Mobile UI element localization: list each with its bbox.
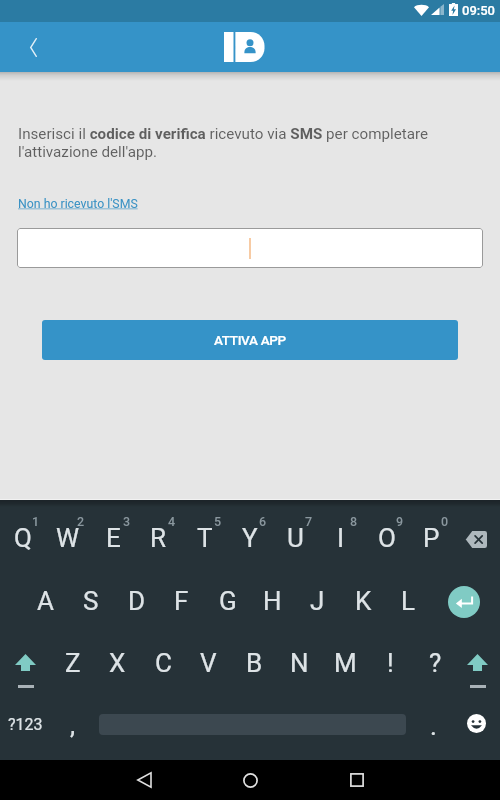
button[interactable]: M [323, 638, 368, 688]
button[interactable]: Y [227, 513, 272, 563]
button[interactable]: O [364, 513, 409, 563]
staticText: J [310, 586, 325, 616]
staticText: 8 [350, 514, 358, 529]
staticText: O [378, 523, 396, 553]
button[interactable]: , [55, 703, 91, 747]
button[interactable]: Indietro [120, 760, 168, 800]
staticText: F [174, 586, 189, 616]
staticText: ? [429, 648, 442, 678]
staticText: S [83, 586, 99, 616]
button[interactable]: Invio [441, 579, 486, 624]
button[interactable]: E [91, 513, 136, 563]
staticText: C [155, 648, 172, 678]
staticText: N [290, 648, 309, 678]
staticText: K [355, 586, 372, 616]
staticText: M [334, 648, 357, 678]
staticText: 9 [396, 514, 404, 529]
button[interactable]: Indietro [4, 22, 56, 72]
button[interactable] [17, 228, 483, 268]
button[interactable]: W [45, 513, 90, 563]
button[interactable]: P [409, 513, 454, 563]
button[interactable]: I [318, 513, 363, 563]
staticText: ! [387, 648, 394, 678]
button[interactable]: C [141, 638, 186, 688]
button[interactable]: B [232, 638, 277, 688]
staticText: 6 [259, 514, 267, 529]
staticText: A [37, 586, 54, 616]
staticText: H [263, 586, 282, 616]
button[interactable]: J [295, 576, 340, 626]
staticText: Q [14, 523, 32, 553]
button[interactable]: Backspace [453, 514, 498, 564]
button[interactable]: Q [0, 513, 45, 563]
button[interactable]: V [186, 638, 231, 688]
staticText: B [246, 648, 263, 678]
staticText: 09:50 [462, 3, 496, 18]
staticText: G [219, 586, 237, 616]
staticText: X [109, 648, 126, 678]
button[interactable]: L [386, 576, 431, 626]
staticText: 2 [77, 514, 85, 529]
staticText: Inserisci il codice di verifica ricevuto… [18, 125, 438, 161]
staticText: 5 [214, 514, 222, 529]
staticText: 0 [441, 514, 449, 529]
staticText: Z [65, 648, 81, 678]
button[interactable]: T [182, 513, 227, 563]
staticText: W [56, 523, 80, 553]
button[interactable]: ATTIVA APP [42, 320, 458, 360]
staticText: 3 [123, 514, 131, 529]
button[interactable]: ! [368, 638, 413, 688]
staticText: T [197, 523, 213, 553]
button[interactable]: R [136, 513, 181, 563]
button[interactable]: K [341, 576, 386, 626]
button[interactable]: Emoji [454, 701, 498, 745]
staticText: L [401, 586, 416, 616]
staticText: 4 [168, 514, 176, 529]
staticText: D [128, 586, 146, 616]
staticText: 1 [32, 514, 40, 529]
button[interactable]: U [273, 513, 318, 563]
staticText: I [337, 523, 345, 553]
button[interactable]: Z [50, 638, 95, 688]
staticText: , [70, 710, 76, 740]
staticText: U [287, 523, 304, 553]
staticText: . [430, 711, 437, 741]
staticText: ATTIVA APP [214, 332, 286, 348]
staticText: E [106, 523, 121, 553]
button[interactable]: N [277, 638, 322, 688]
button[interactable]: D [114, 576, 159, 626]
staticText: Non ho ricevuto l'SMS [18, 197, 138, 211]
button[interactable]: Maiusc [3, 654, 48, 688]
button[interactable]: H [250, 576, 295, 626]
button[interactable]: ?123 [0, 702, 50, 746]
button[interactable]: X [95, 638, 140, 688]
staticText: V [200, 648, 217, 678]
staticText: P [423, 523, 440, 553]
button[interactable]: G [205, 576, 250, 626]
button[interactable]: Non ho ricevuto l'SMS [18, 197, 138, 211]
button[interactable]: . [415, 704, 451, 748]
staticText: R [150, 523, 167, 553]
button[interactable]: ? [413, 638, 458, 688]
button[interactable]: S [68, 576, 113, 626]
button[interactable]: Home [226, 760, 274, 800]
button[interactable]: Maiusc [455, 654, 500, 688]
button[interactable]: Panoramica [333, 760, 381, 800]
button[interactable]: A [23, 576, 68, 626]
staticText: 7 [305, 514, 313, 529]
staticText: Y [242, 523, 258, 553]
staticText: ?123 [8, 715, 43, 734]
button[interactable]: F [159, 576, 204, 626]
